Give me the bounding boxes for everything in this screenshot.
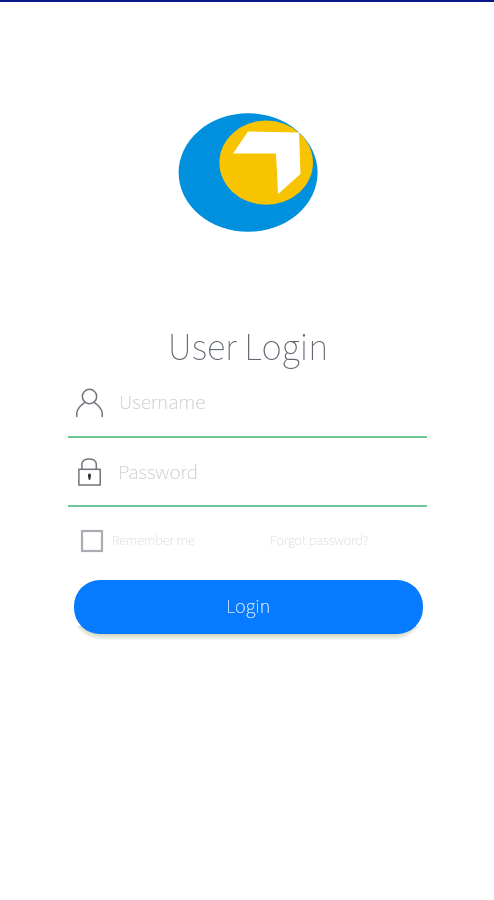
staticText: Username xyxy=(119,387,206,417)
button[interactable]: Login xyxy=(74,580,423,634)
button[interactable]: Remember me xyxy=(82,524,195,557)
staticText: Login xyxy=(226,593,271,621)
button[interactable]: Forgot password? xyxy=(262,524,361,557)
staticText: Password xyxy=(118,457,199,487)
staticText: Remember me xyxy=(112,531,195,551)
staticText: User Login xyxy=(1,321,494,375)
button[interactable]: Password xyxy=(69,454,428,490)
staticText: Forgot password? xyxy=(270,531,369,551)
button[interactable]: Username xyxy=(69,375,428,429)
other: App logo xyxy=(178,113,318,232)
